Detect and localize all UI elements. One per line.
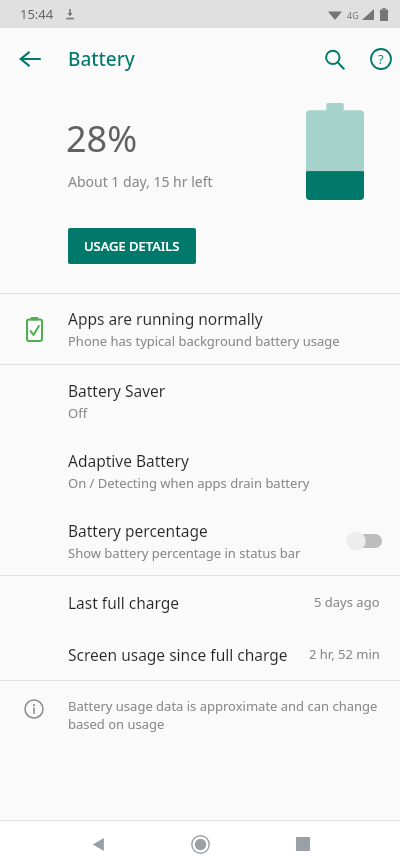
staticText: 28%	[66, 114, 138, 163]
staticText: Adaptive Battery	[68, 450, 189, 471]
staticText: ?	[378, 50, 384, 68]
staticText: Battery Saver	[68, 380, 166, 401]
button[interactable]: Help	[359, 37, 400, 81]
staticText: Last full charge	[68, 592, 314, 613]
staticText: Apps are running normally	[68, 308, 263, 329]
button[interactable]: Battery percentage	[0, 505, 400, 575]
button[interactable]: Apps are running normally	[0, 294, 400, 364]
staticText: Screen usage since full charge	[68, 644, 309, 665]
staticText: 4G	[347, 9, 359, 21]
button[interactable]: Battery Saver	[0, 365, 400, 435]
button[interactable]: Battery percentage toggle	[346, 529, 382, 553]
staticText: USAGE DETAILS	[84, 237, 180, 255]
staticText: Battery	[68, 46, 135, 72]
staticText: Show battery percentage in status bar	[68, 544, 301, 562]
button[interactable]: Screen usage since full charge	[0, 628, 400, 680]
button[interactable]: Home	[176, 821, 224, 867]
button[interactable]: Adaptive Battery	[0, 435, 400, 505]
staticText: 2 hr, 52 min	[309, 645, 380, 663]
staticText: About 1 day, 15 hr left	[68, 172, 213, 191]
button[interactable]: USAGE DETAILS	[68, 228, 196, 264]
staticText: 15:44	[20, 5, 54, 23]
staticText: Phone has typical background battery usa…	[68, 332, 340, 350]
button[interactable]: Back	[8, 37, 52, 81]
button[interactable]: Last full charge	[0, 576, 400, 628]
button[interactable]: Search	[312, 37, 356, 81]
button[interactable]: Back	[74, 821, 122, 867]
staticText: Battery usage data is approximate and ca…	[68, 697, 380, 733]
staticText: 5 days ago	[314, 593, 380, 611]
staticText: Off	[68, 404, 88, 422]
staticText: On / Detecting when apps drain battery	[68, 474, 310, 492]
staticText: Battery percentage	[68, 520, 208, 541]
button[interactable]: Recent apps	[279, 821, 327, 867]
